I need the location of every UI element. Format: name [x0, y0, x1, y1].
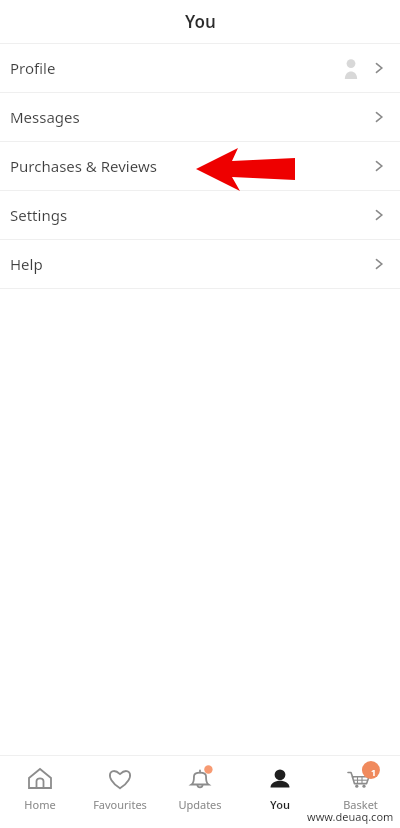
- button[interactable]: Profile: [0, 44, 400, 92]
- staticText: You: [270, 797, 290, 812]
- button[interactable]: Settings: [0, 191, 400, 239]
- staticText: Updates: [178, 797, 222, 812]
- button[interactable]: Home: [0, 756, 80, 828]
- staticText: Purchases & Reviews: [10, 156, 157, 176]
- button[interactable]: Updates: [160, 756, 240, 828]
- button[interactable]: Favourites: [80, 756, 160, 828]
- button[interactable]: You: [240, 756, 320, 828]
- staticText: Settings: [10, 205, 68, 225]
- staticText: You: [185, 10, 216, 33]
- staticText: Profile: [10, 58, 56, 78]
- staticText: Messages: [10, 107, 80, 127]
- staticText: www.deuaq.com: [307, 809, 394, 824]
- button[interactable]: Help: [0, 240, 400, 288]
- button[interactable]: Purchases & Reviews: [0, 142, 400, 190]
- button[interactable]: Messages: [0, 93, 400, 141]
- staticText: Basket: [343, 797, 378, 812]
- staticText: Home: [24, 797, 56, 812]
- staticText: Favourites: [93, 797, 147, 812]
- staticText: Help: [10, 254, 43, 274]
- staticText: 1: [371, 766, 377, 778]
- button[interactable]: 1: [320, 756, 400, 828]
